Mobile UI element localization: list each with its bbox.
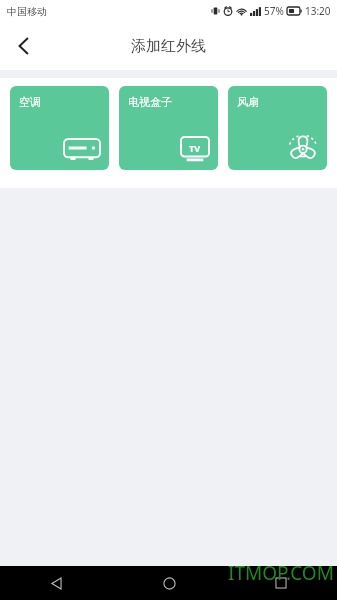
staticText: 添加红外线 — [131, 37, 206, 56]
staticText: TV — [189, 142, 201, 154]
button[interactable]: 电视盒子 — [119, 86, 218, 170]
staticText: 风扇 — [237, 95, 259, 109]
staticText: ITMOP.COM — [228, 560, 334, 586]
staticText: 57% — [264, 4, 284, 18]
staticText: 空调 — [19, 95, 41, 109]
button[interactable]: Back — [0, 22, 48, 70]
staticText: 中国移动 — [7, 5, 47, 18]
staticText: 电视盒子 — [128, 95, 172, 109]
staticText: 13:20 — [305, 4, 331, 18]
button[interactable]: Recent apps — [225, 566, 337, 600]
button[interactable]: Home — [113, 566, 225, 600]
button[interactable]: Back — [0, 566, 113, 600]
button[interactable]: 风扇 — [228, 86, 327, 170]
button[interactable]: 空调 — [10, 86, 109, 170]
